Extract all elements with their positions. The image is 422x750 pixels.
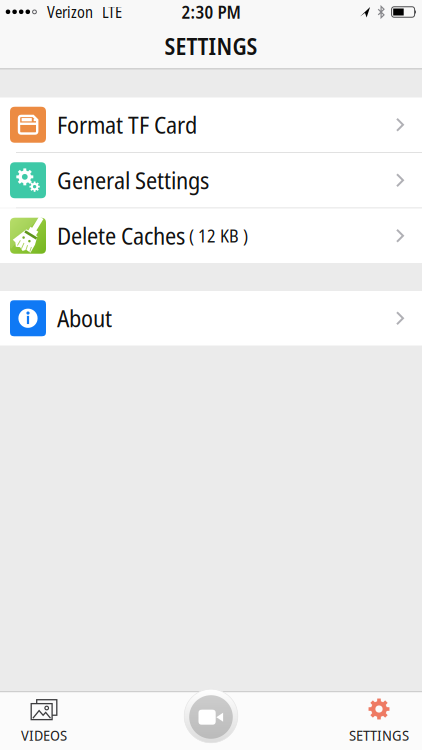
staticText: About: [57, 302, 112, 334]
staticText: Verizon: [47, 2, 93, 22]
staticText: Format TF Card: [57, 109, 197, 141]
button[interactable]: Record video: [184, 689, 238, 743]
staticText: ( 12 KB ): [189, 224, 248, 247]
button[interactable]: About: [0, 291, 422, 345]
staticText: SETTINGS: [164, 31, 257, 62]
staticText: LTE: [102, 2, 122, 22]
button[interactable]: VIDEOS: [0, 699, 67, 750]
staticText: SETTINGS: [349, 725, 409, 745]
button[interactable]: Format TF Card: [0, 97, 422, 152]
button[interactable]: SETTINGS: [349, 698, 422, 750]
button[interactable]: General Settings: [0, 153, 422, 207]
staticText: General Settings: [57, 164, 209, 196]
staticText: VIDEOS: [21, 725, 67, 745]
staticText: Delete Caches: [57, 220, 185, 252]
staticText: 2:30 PM: [181, 0, 240, 24]
button[interactable]: Delete Caches: [0, 208, 422, 263]
